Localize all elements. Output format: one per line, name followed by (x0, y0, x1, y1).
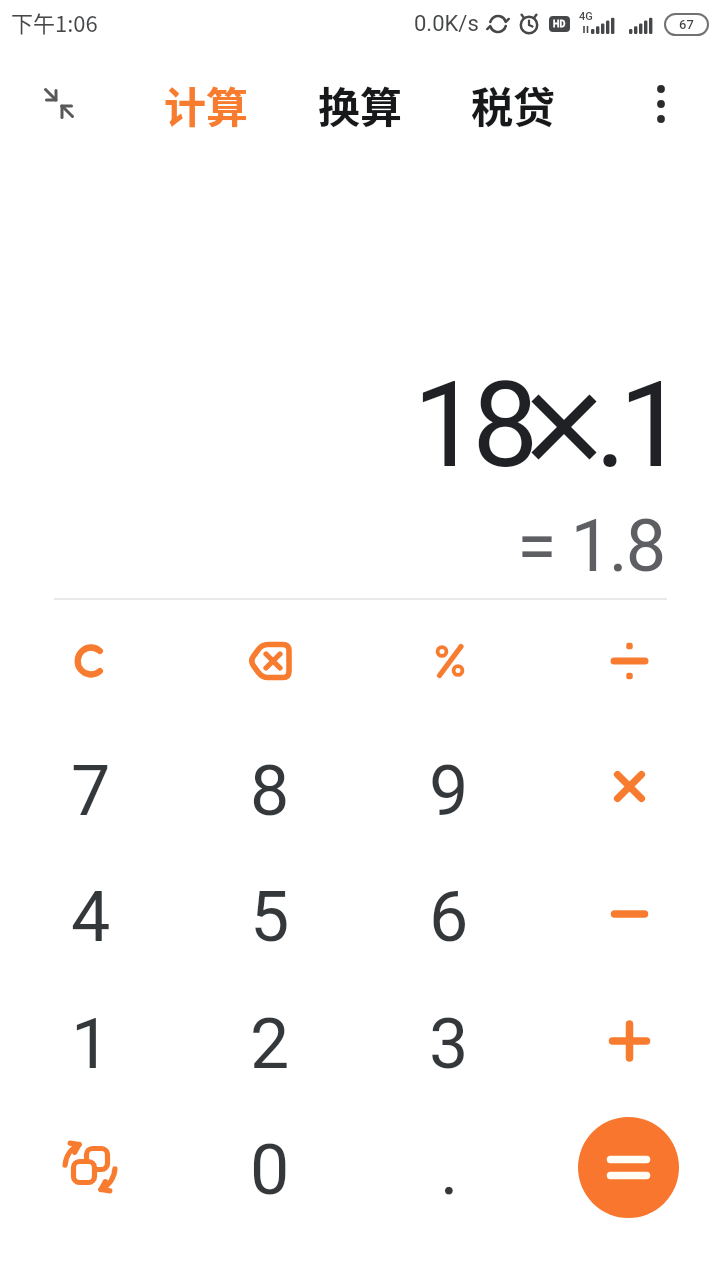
button[interactable]: 换算 (295, 72, 425, 136)
button[interactable]: 9 (389, 736, 509, 846)
button[interactable]: 5 (210, 862, 330, 972)
staticText: 4G (579, 10, 593, 23)
staticText: 6 (429, 876, 469, 958)
button[interactable] (568, 733, 688, 843)
button[interactable] (35, 81, 81, 127)
button[interactable]: 6 (389, 862, 509, 972)
button[interactable]: 3 (389, 989, 509, 1099)
staticText: 2 (250, 1003, 290, 1085)
button[interactable] (638, 81, 684, 127)
button[interactable] (31, 606, 151, 716)
button[interactable] (389, 606, 509, 716)
button[interactable] (568, 859, 688, 969)
staticText: . (440, 1129, 459, 1211)
button[interactable]: 4 (31, 862, 151, 972)
staticText: 1 (71, 1003, 111, 1085)
staticText: 3 (429, 1003, 469, 1085)
button[interactable]: 8 (210, 736, 330, 846)
staticText: 0.0K/s (414, 11, 479, 37)
button[interactable] (568, 606, 688, 716)
button[interactable]: . (389, 1115, 509, 1225)
staticText: .1 (595, 357, 679, 495)
button[interactable]: 税贷 (448, 72, 578, 136)
staticText: 4 (71, 876, 111, 958)
staticText: 换算 (318, 74, 403, 135)
staticText: 8 (250, 750, 290, 832)
button[interactable]: 7 (31, 736, 151, 846)
button[interactable]: 1 (31, 989, 151, 1099)
button[interactable] (578, 1117, 679, 1218)
staticText: 67 (679, 17, 694, 32)
staticText: 计算 (164, 74, 249, 135)
button[interactable] (210, 606, 330, 716)
staticText: 18 (413, 357, 532, 495)
button[interactable]: 2 (210, 989, 330, 1099)
button[interactable]: 0 (210, 1115, 330, 1225)
staticText: 9 (429, 750, 469, 832)
staticText: 0 (250, 1129, 290, 1211)
staticText: 税贷 (471, 74, 556, 135)
button[interactable] (568, 986, 688, 1096)
staticText: = 1.8 (517, 504, 665, 576)
staticText: HD (553, 19, 566, 30)
button[interactable]: 计算 (141, 72, 271, 136)
staticText: 5 (250, 876, 290, 958)
button[interactable] (31, 1112, 151, 1222)
staticText: 7 (71, 750, 111, 832)
staticText: 下午1:06 (11, 6, 98, 38)
